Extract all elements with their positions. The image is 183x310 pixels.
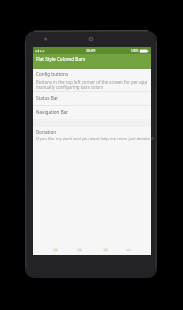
button[interactable]: Status Bar	[33, 92, 151, 105]
button[interactable]: Navigation Bar	[33, 106, 151, 119]
button[interactable]: Donation	[33, 126, 151, 144]
staticText: 100%	[131, 49, 139, 53]
staticText: manually configuring bars colors	[36, 84, 104, 90]
staticText: Config buttons	[36, 71, 69, 77]
staticText: Buttons in the top left corner of the sc…	[36, 79, 148, 85]
staticText: Donation	[36, 129, 57, 135]
staticText: If you like my work and you want help me…	[36, 136, 154, 142]
staticText: Status Bar	[36, 95, 59, 101]
staticText: Flat Style Colored Bars	[36, 56, 86, 62]
staticText: Navigation Bar	[36, 109, 69, 115]
button[interactable]	[33, 54, 151, 69]
staticText: 20:09	[86, 48, 96, 53]
button[interactable]: Config buttons	[33, 68, 151, 91]
